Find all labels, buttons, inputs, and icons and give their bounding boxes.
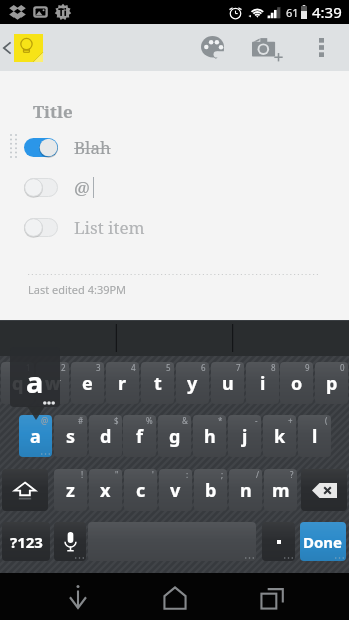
button[interactable]: ?123 [2,522,50,561]
staticText: f [136,424,143,449]
button[interactable]: k [263,415,296,457]
button[interactable]: Shift [2,469,48,511]
button[interactable]: y [176,362,209,404]
button[interactable]: w [36,362,69,404]
staticText: j [242,424,248,449]
button[interactable]: i [246,362,279,404]
staticText: m [272,478,290,503]
staticText: 6 [201,362,206,373]
staticText: r [118,371,127,396]
button[interactable]: u [211,362,244,404]
staticText: u [222,371,234,396]
staticText: @ [41,415,49,426]
staticText: 5 [166,362,171,373]
staticText: a [26,362,44,401]
staticText: : [186,469,189,480]
staticText: 0 [340,362,345,373]
button[interactable]: Recent apps [242,573,302,620]
button[interactable]: s [54,415,87,457]
staticText: k [274,424,286,449]
button[interactable]: l [298,415,331,457]
staticText: ?123 [10,532,43,552]
button[interactable]: Blah [0,128,349,166]
staticText: c [136,478,146,503]
staticText: ? [290,469,294,480]
button[interactable]: @ [0,168,349,206]
staticText: x [100,478,111,503]
staticText: n [240,478,252,503]
staticText: t [154,371,162,396]
staticText: a [30,424,41,449]
button[interactable]: Done [300,522,346,561]
button[interactable]: d [89,415,122,457]
staticText: b [205,478,217,503]
staticText: " [115,469,119,480]
staticText: y [187,371,198,396]
staticText: 61 [286,5,299,20]
staticText: ; [221,469,224,480]
staticText: z [66,478,75,503]
staticText: @ [74,176,90,199]
staticText: $ [114,415,119,426]
staticText: q [12,371,24,396]
button[interactable]: m [264,469,297,511]
staticText: 4 [131,362,136,373]
staticText: List item [74,216,145,239]
button[interactable]: x [89,469,122,511]
staticText: 4:39 [312,2,342,22]
staticText: % [146,415,153,426]
staticText: l [312,424,318,449]
button[interactable]: Back [0,24,14,71]
button[interactable]: r [106,362,139,404]
button[interactable]: Period [262,522,295,561]
button[interactable]: Colour palette [189,24,236,71]
button[interactable]: b [194,469,227,511]
staticText: 9 [305,362,310,373]
button[interactable]: Home [145,573,205,620]
staticText: + [288,415,293,426]
staticText: s [66,424,76,449]
staticText: ! [81,469,84,480]
staticText: h [204,424,216,449]
button[interactable]: n [229,469,262,511]
button[interactable]: p [315,362,348,404]
button[interactable]: Note [14,34,43,62]
button[interactable]: c [124,469,157,511]
staticText: / [256,469,259,480]
staticText: d [100,424,112,449]
button[interactable]: Add photo [243,24,291,71]
staticText: Title [33,100,73,123]
button[interactable]: e [71,362,104,404]
button[interactable]: j [228,415,261,457]
staticText: - [255,415,258,426]
button[interactable]: Space [88,522,256,561]
staticText: # [78,415,84,426]
staticText: 2 [61,362,66,373]
staticText: 3 [96,362,101,373]
staticText: v [170,478,181,503]
button[interactable]: Voice input [54,522,86,561]
button[interactable]: a [19,415,52,457]
button[interactable]: t [141,362,174,404]
staticText: i [260,371,266,396]
button[interactable]: List item [0,208,349,246]
button[interactable]: z [54,469,87,511]
staticText: Done [303,532,343,552]
button[interactable]: Backspace [301,469,347,511]
staticText: ( [325,415,328,426]
button[interactable]: o [280,362,313,404]
button[interactable]: q [1,362,34,404]
staticText: g [169,424,181,449]
staticText: 7 [236,362,241,373]
staticText: p [326,371,338,396]
staticText: w [45,371,61,396]
button[interactable]: Hide keyboard [48,573,108,620]
button[interactable]: h [193,415,226,457]
staticText: * [218,415,223,426]
button[interactable]: f [123,415,156,457]
button[interactable]: More options [305,24,338,71]
staticText: ' [152,469,154,480]
button[interactable]: v [159,469,192,511]
button[interactable]: g [158,415,191,457]
